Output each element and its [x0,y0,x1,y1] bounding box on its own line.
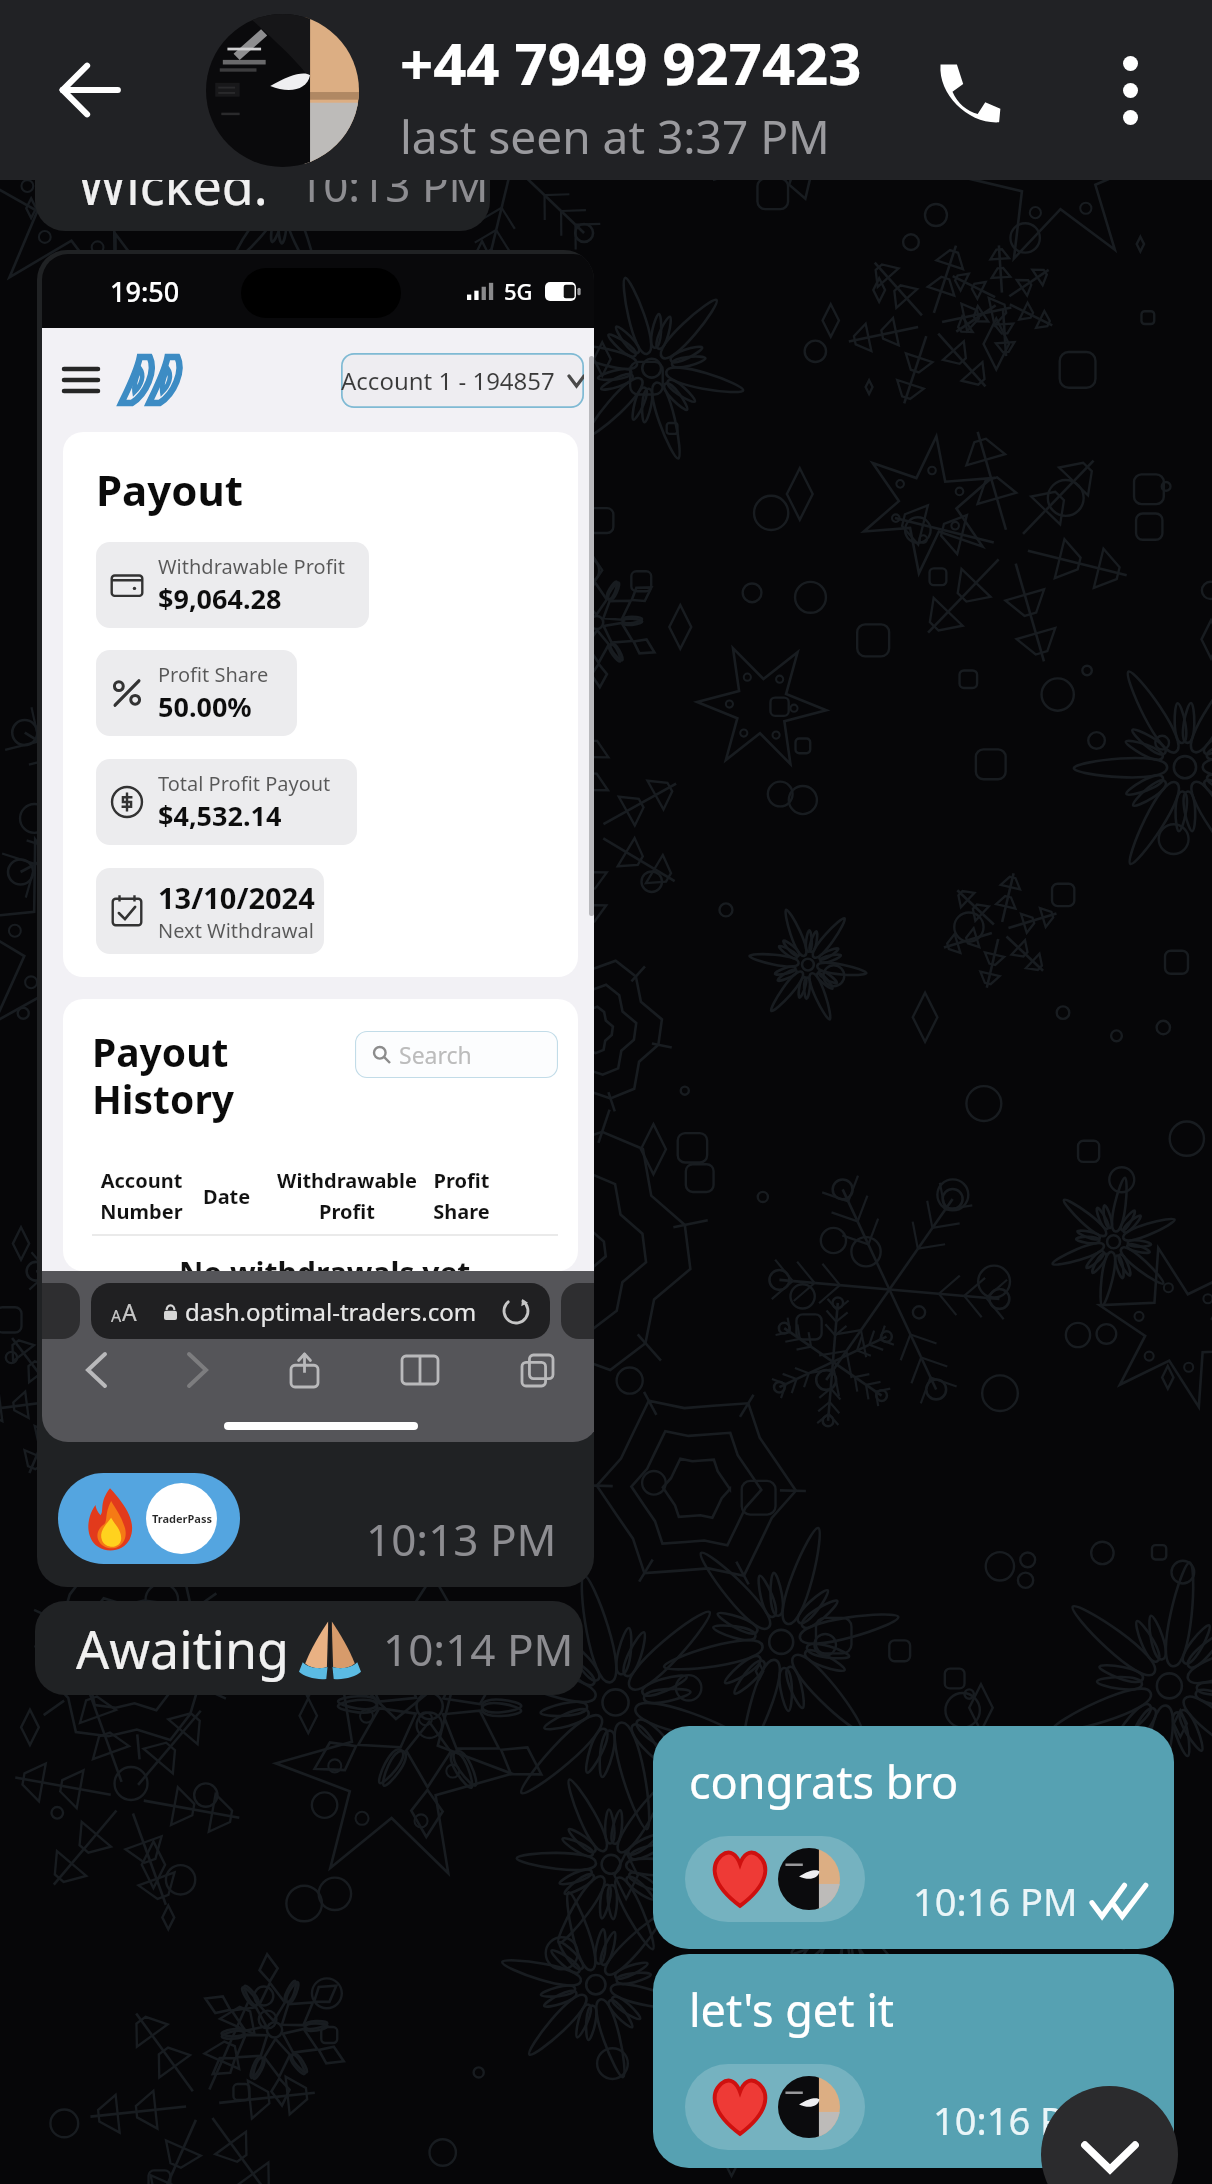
staticText: TraderPass [152,1511,212,1526]
button[interactable]: Back [0,0,180,180]
staticText: A [122,1296,137,1327]
staticText: +44 7949 927423 [400,23,862,102]
staticText: Payout History [92,1025,235,1125]
staticText: congrats bro [689,1751,959,1812]
staticText: 10:16 PM [933,2094,1098,2146]
staticText: Withdrawable Profit [158,553,345,580]
staticText: 10:16 PM [913,1875,1078,1927]
staticText: let's get it [689,1979,895,2040]
staticText: 5G [504,276,533,306]
staticText: 10:14 PM [383,1619,574,1679]
button[interactable]: let's get it [653,1954,1174,2168]
staticText: 50.00% [158,688,252,725]
staticText: Profit Share [158,661,269,688]
staticText: Awaiting [76,1613,289,1684]
staticText: Account 1 - 194857 [341,364,555,397]
staticText: Date [203,1183,251,1210]
staticText: Profit Share [433,1167,490,1224]
staticText: last seen at 3:37 PM [400,105,830,168]
staticText: No withdrawals yet [179,1252,471,1271]
staticText: $9,064.28 [158,580,282,617]
staticText: Search [399,1039,472,1070]
staticText: 13/10/2024 [158,878,315,917]
staticText: Next Withdrawal [158,917,314,944]
button[interactable]: Wicked. [35,137,490,231]
button[interactable]: Scroll to bottom [1041,2086,1178,2184]
button[interactable]: congrats bro [653,1726,1174,1949]
staticText: 10:13 PM [366,1509,557,1569]
staticText: Payout [96,461,244,518]
button[interactable]: Awaiting [35,1601,583,1695]
staticText: Withdrawable Profit [277,1167,417,1224]
staticText: dash.optimal-traders.com [185,1295,477,1328]
button[interactable]: More options [1067,0,1193,180]
staticText: Wicked. [78,149,268,220]
staticText: 19:50 [110,273,180,310]
staticText: Total Profit Payout [158,770,331,797]
button[interactable]: Call [871,0,1067,180]
button[interactable]: 19:50 [37,250,594,1587]
staticText: $4,532.14 [158,797,282,834]
staticText: A [111,1305,122,1327]
staticText: 10:13 PM [298,155,489,215]
staticText: Account Number [100,1167,183,1224]
